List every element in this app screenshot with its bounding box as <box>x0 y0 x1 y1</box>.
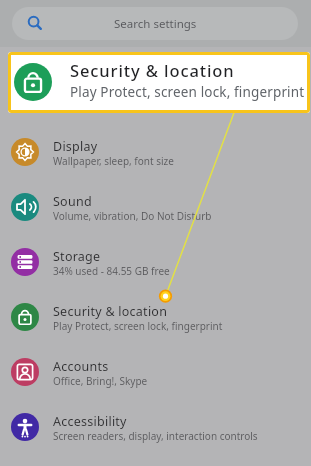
button[interactable]: Security & location <box>8 52 310 113</box>
staticText: 34% used - 84.55 GB free <box>53 264 170 278</box>
staticText: Play Protect, screen lock, fingerprint <box>70 83 305 101</box>
button[interactable]: Security & location <box>0 289 311 344</box>
button[interactable]: Accessibility <box>0 399 311 454</box>
staticText: Volume, vibration, Do Not Disturb <box>53 209 212 223</box>
staticText: Office, Bring!, Skype <box>53 374 148 388</box>
button[interactable]: Search settings <box>12 7 298 40</box>
button[interactable]: Storage <box>0 234 311 289</box>
staticText: Security & location <box>70 59 235 81</box>
staticText: Storage <box>53 248 101 265</box>
staticText: Wallpaper, sleep, font size <box>53 154 174 168</box>
staticText: Sound <box>53 193 92 210</box>
staticText: Search settings <box>114 16 197 32</box>
staticText: Accounts <box>53 358 109 375</box>
button[interactable]: Accounts <box>0 344 311 399</box>
staticText: Play Protect, screen lock, fingerprint <box>53 319 223 333</box>
staticText: Screen readers, display, interaction con… <box>53 429 258 443</box>
staticText: Security & location <box>53 303 168 320</box>
staticText: Accessibility <box>53 413 127 430</box>
staticText: Display <box>53 138 98 155</box>
button[interactable]: Sound <box>0 179 311 234</box>
button[interactable]: Display <box>0 124 311 179</box>
